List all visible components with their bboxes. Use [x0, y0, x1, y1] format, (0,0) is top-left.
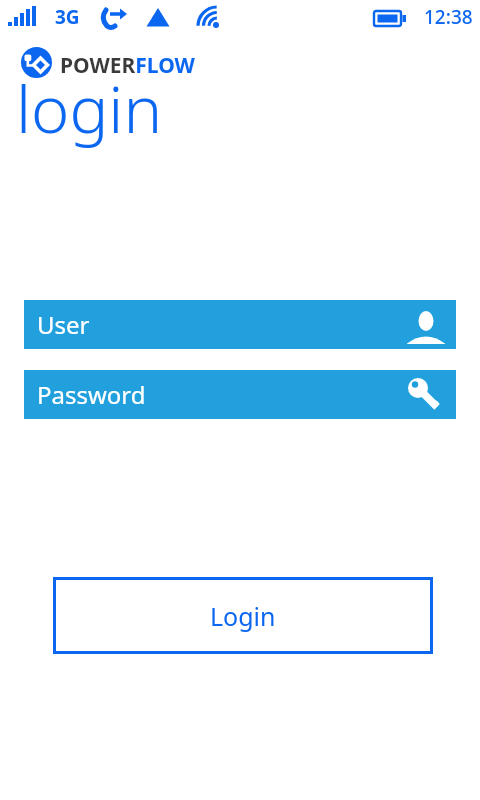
staticText: Login — [210, 599, 276, 633]
staticText: 3G — [55, 4, 80, 30]
button[interactable]: Password — [24, 370, 456, 419]
staticText: User — [37, 308, 90, 341]
button[interactable]: User — [24, 300, 456, 349]
staticText: login — [16, 64, 163, 153]
staticText: 12:38 — [424, 4, 473, 30]
staticText: Password — [37, 378, 146, 411]
button[interactable]: Login — [53, 577, 433, 654]
staticText: POWERFLOW — [60, 51, 195, 80]
